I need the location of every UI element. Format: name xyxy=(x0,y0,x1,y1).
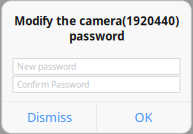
staticText: Dismiss xyxy=(27,108,72,126)
staticText: OK xyxy=(134,108,152,126)
staticText: New password xyxy=(17,60,76,72)
button[interactable]: Dismiss xyxy=(3,102,96,132)
staticText: Modify the camera(1920440) password xyxy=(14,13,179,44)
staticText: Confirm Password xyxy=(17,78,89,90)
button[interactable]: OK xyxy=(97,102,190,132)
